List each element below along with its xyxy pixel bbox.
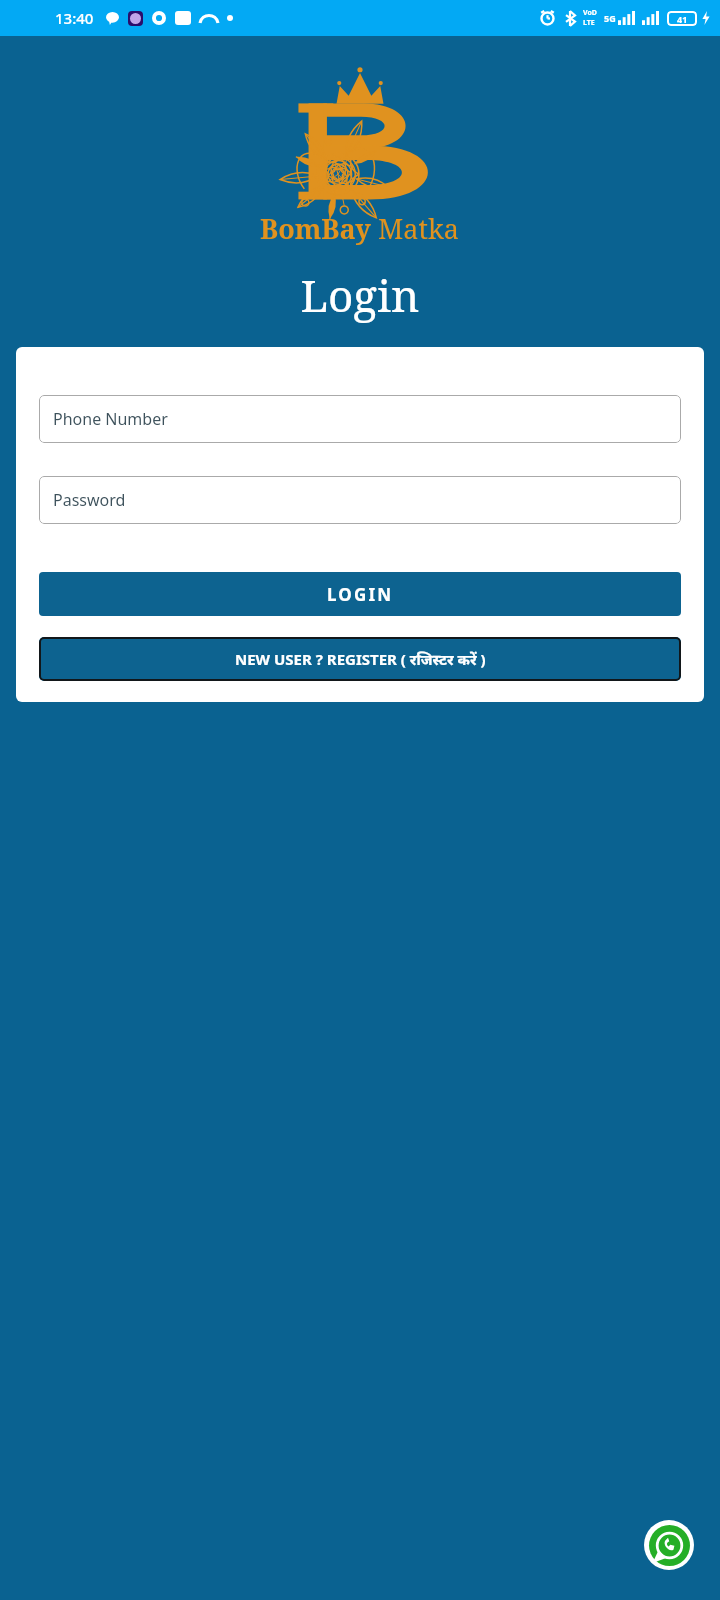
button[interactable]: Password: [39, 476, 681, 524]
button[interactable]: Phone Number: [39, 395, 681, 443]
staticText: BomBay: [260, 210, 371, 247]
staticText: 41: [677, 13, 688, 25]
button[interactable]: NEW USER ? REGISTER ( रजिस्टर करें ): [39, 637, 681, 681]
button[interactable]: WhatsApp support: [644, 1520, 694, 1570]
staticText: Password: [53, 489, 126, 511]
staticText: Phone Number: [53, 408, 168, 430]
staticText: Login: [0, 265, 720, 325]
staticText: NEW USER ? REGISTER ( रजिस्टर करें ): [235, 649, 486, 669]
staticText: Matka: [378, 210, 460, 247]
staticText: VoD: [583, 8, 597, 18]
staticText: LOGIN: [327, 583, 394, 606]
button[interactable]: LOGIN: [39, 572, 681, 616]
staticText: 13:40: [55, 8, 94, 28]
staticText: LTE: [583, 18, 595, 28]
staticText: 5G: [604, 12, 616, 24]
